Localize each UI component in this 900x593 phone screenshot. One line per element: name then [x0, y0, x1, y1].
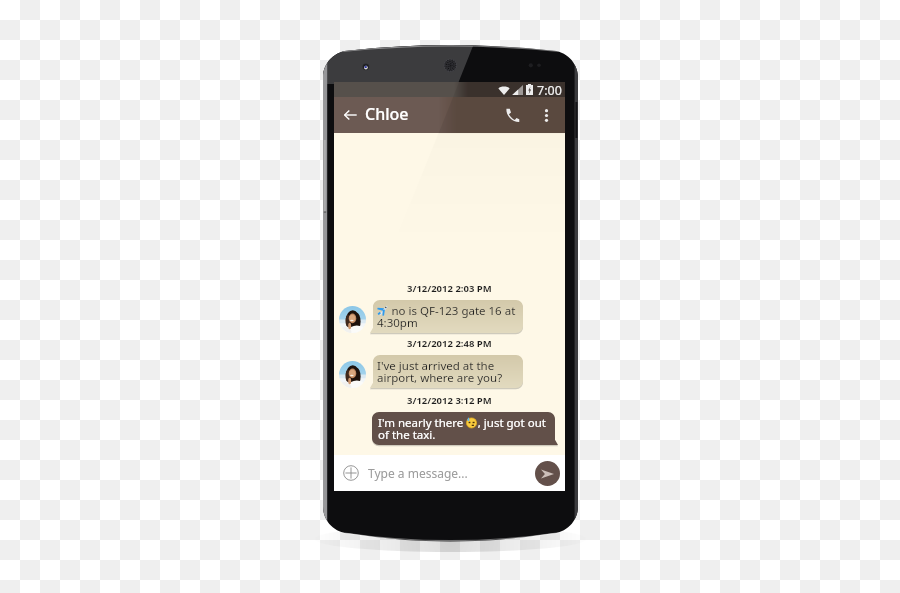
- button[interactable]: Back: [334, 97, 365, 133]
- button[interactable]: Add attachment: [334, 455, 368, 491]
- staticText: Chloe: [365, 103, 409, 125]
- staticText: I'm nearly there @, just got out of the …: [378, 415, 549, 442]
- staticText: Type a message...: [368, 465, 468, 481]
- button[interactable]: More options: [528, 97, 565, 133]
- button[interactable]: Send: [535, 461, 560, 486]
- staticText: @ no is QF-123 gate 16 at 4:30pm: [377, 303, 518, 330]
- staticText: 3/12/2012 2:48 PM: [407, 337, 492, 350]
- staticText: 3/12/2012 3:12 PM: [407, 394, 492, 407]
- button[interactable]: Call: [495, 97, 528, 133]
- button[interactable]: I've just arrived at the airport, where …: [370, 355, 523, 388]
- staticText: 7:00: [537, 82, 562, 97]
- button[interactable]: @ no is QF-123 gate 16 at 4:30pm: [370, 300, 523, 333]
- staticText: 3/12/2012 2:03 PM: [407, 282, 492, 295]
- button[interactable]: I'm nearly there @, just got out of the …: [372, 412, 558, 445]
- staticText: I've just arrived at the airport, where …: [377, 358, 518, 385]
